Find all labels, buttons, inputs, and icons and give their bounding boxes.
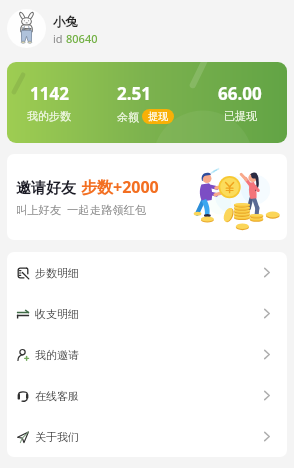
other: 我的邀请	[17, 349, 29, 361]
staticText: 小兔	[53, 14, 78, 30]
staticText: 66.00	[218, 82, 262, 105]
staticText: 已提现	[224, 109, 257, 123]
staticText: 余额	[117, 110, 139, 124]
staticText: id	[53, 31, 66, 46]
other: 收支明细	[17, 308, 29, 320]
staticText: 叫上好友 一起走路领红包	[16, 202, 147, 217]
staticText: 步数明细	[35, 266, 79, 280]
staticText: 在线客服	[35, 389, 79, 403]
staticText: 我的邀请	[35, 348, 79, 362]
staticText: 80640	[66, 31, 98, 46]
other: 步数明细	[17, 267, 29, 279]
staticText: 1142	[30, 82, 69, 105]
staticText: 2.51	[117, 82, 151, 105]
staticText: 步数+2000	[81, 176, 159, 198]
button[interactable]: 关于我们	[7, 416, 287, 457]
button[interactable]: 我的邀请	[7, 334, 287, 375]
other: 关于我们	[17, 431, 29, 443]
button[interactable]: 在线客服	[7, 375, 287, 416]
staticText: 我的步数	[27, 109, 71, 123]
button[interactable]: 邀请好友	[7, 154, 287, 240]
button[interactable]: 步数明细	[7, 252, 287, 293]
staticText: 关于我们	[35, 430, 79, 444]
other: 在线客服	[17, 390, 29, 402]
staticText: 收支明细	[35, 307, 79, 321]
button[interactable]: 小兔	[7, 0, 294, 56]
button[interactable]: 提现	[142, 109, 174, 124]
staticText: 提现	[148, 110, 168, 123]
staticText: 邀请好友	[16, 179, 76, 198]
button[interactable]: 收支明细	[7, 293, 287, 334]
